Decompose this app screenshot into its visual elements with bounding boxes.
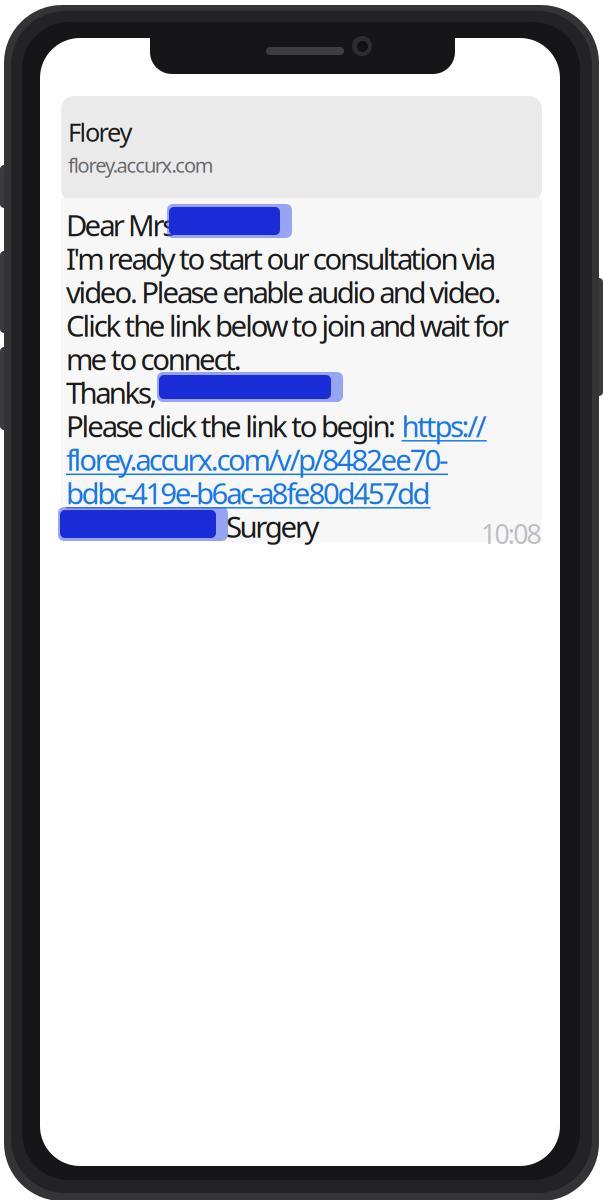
staticText: 10:08 — [481, 516, 542, 551]
staticText: Click the link below to join and wait fo… — [66, 306, 509, 345]
staticText: Surgery — [226, 507, 320, 546]
staticText: Thanks, — [66, 373, 158, 412]
staticText: video. Please enable audio and video. — [66, 272, 502, 311]
staticText: florey.accurx.com — [68, 152, 214, 178]
staticText: florey.accurx.com/v/p/8482ee70- — [66, 440, 448, 479]
button[interactable]: https:// — [402, 406, 487, 445]
staticText: Florey — [68, 115, 132, 149]
staticText: bdbc-419e-b6ac-a8fe80d457dd — [66, 473, 431, 512]
staticText: I'm ready to start our consultation via — [66, 239, 496, 278]
staticText: Please click the link to begin: — [66, 406, 402, 445]
button[interactable]: florey.accurx.com/v/p/8482ee70- — [66, 442, 528, 509]
staticText: https:// — [402, 406, 487, 445]
staticText: Dear Mrs — [66, 205, 176, 244]
staticText: me to connect. — [66, 339, 242, 378]
button[interactable]: Florey — [61, 96, 542, 202]
